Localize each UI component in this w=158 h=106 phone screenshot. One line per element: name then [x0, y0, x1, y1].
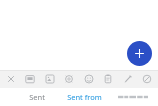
button[interactable]: Keyboard [22, 71, 38, 87]
button[interactable]: Close [3, 71, 19, 87]
button[interactable]: Draw [120, 71, 136, 87]
button[interactable]: Clipboard [100, 71, 116, 87]
button[interactable]: Settings [61, 71, 77, 87]
button[interactable]: Emoji [81, 71, 97, 87]
button[interactable]: Sent [27, 91, 47, 103]
button[interactable]: Attach image [42, 71, 58, 87]
staticText: Sent from [67, 92, 102, 102]
button[interactable]: Sent from [65, 91, 104, 103]
button[interactable]: Block [139, 71, 155, 87]
staticText: Sent [29, 92, 45, 102]
button[interactable]: Compose [127, 41, 152, 66]
button[interactable] [118, 92, 148, 102]
